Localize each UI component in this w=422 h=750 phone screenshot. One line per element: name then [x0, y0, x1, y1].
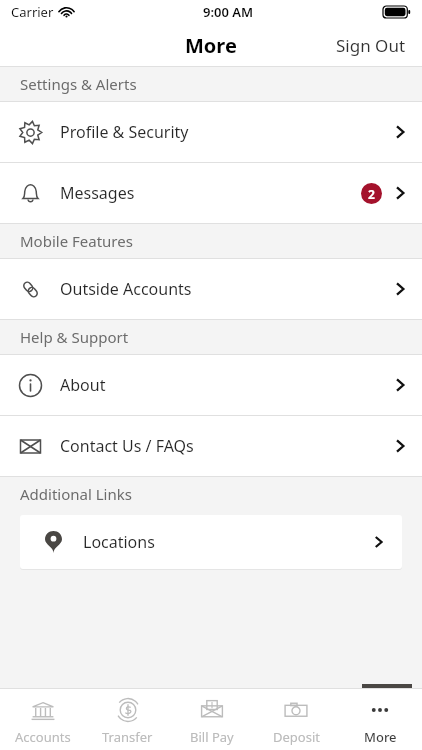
- staticText: Settings & Alerts: [20, 74, 137, 94]
- button[interactable]: More: [338, 689, 422, 750]
- button[interactable]: Sign Out: [320, 26, 422, 65]
- button[interactable]: Outside Accounts: [0, 259, 422, 319]
- staticText: Deposit: [273, 728, 320, 746]
- staticText: Profile & Security: [60, 121, 394, 143]
- staticText: Sign Out: [336, 34, 406, 57]
- staticText: Help & Support: [20, 327, 129, 347]
- button[interactable]: Transfer: [85, 689, 170, 750]
- staticText: More: [185, 32, 237, 59]
- staticText: More: [364, 728, 397, 746]
- button[interactable]: Locations: [20, 515, 402, 569]
- staticText: 9:00 AM: [203, 3, 254, 21]
- button[interactable]: Deposit: [254, 689, 338, 750]
- staticText: 2: [368, 186, 375, 202]
- button[interactable]: Messages: [0, 163, 422, 223]
- staticText: Mobile Features: [20, 231, 133, 251]
- staticText: Messages: [60, 182, 361, 204]
- staticText: Contact Us / FAQs: [60, 435, 394, 457]
- button[interactable]: Profile & Security: [0, 102, 422, 162]
- button[interactable]: About: [0, 355, 422, 415]
- button[interactable]: Contact Us / FAQs: [0, 416, 422, 476]
- staticText: Outside Accounts: [60, 278, 394, 300]
- staticText: Accounts: [15, 728, 71, 746]
- staticText: Bill Pay: [190, 728, 234, 746]
- button[interactable]: Bill Pay: [170, 689, 254, 750]
- staticText: Locations: [83, 531, 373, 553]
- staticText: Additional Links: [20, 484, 132, 504]
- button[interactable]: Accounts: [0, 689, 85, 750]
- staticText: Transfer: [102, 728, 153, 746]
- staticText: About: [60, 374, 394, 396]
- staticText: Carrier: [11, 3, 54, 21]
